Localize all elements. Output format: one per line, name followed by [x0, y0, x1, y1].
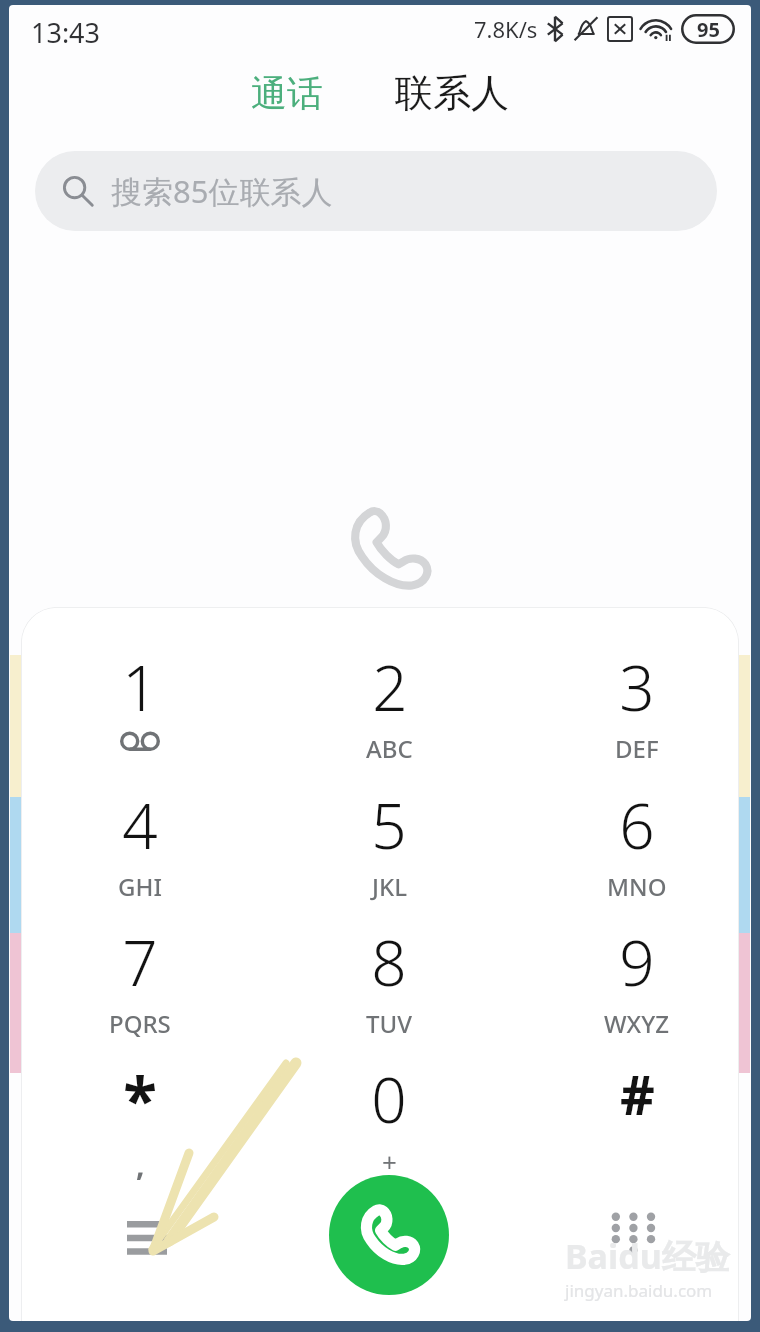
staticText: 2 — [372, 645, 408, 729]
staticText: WXYZ — [604, 1007, 670, 1040]
staticText: 通话 — [251, 71, 323, 116]
staticText: # — [620, 1057, 655, 1131]
button[interactable]: * — [35, 1057, 245, 1189]
staticText: 3 — [619, 645, 655, 729]
staticText: 搜索85位联系人 — [111, 170, 333, 212]
button[interactable]: 通话 — [241, 67, 333, 120]
button[interactable]: 6 — [532, 783, 739, 915]
staticText: + — [382, 1144, 397, 1179]
staticText: GHI — [118, 870, 162, 903]
button[interactable]: 1 — [35, 645, 245, 777]
staticText: 8 — [371, 920, 407, 1004]
staticText: 95 — [697, 16, 720, 43]
button[interactable]: 4 — [35, 783, 245, 915]
staticText: 1 — [122, 645, 158, 729]
staticText: 13:43 — [31, 14, 101, 51]
staticText: 5 — [371, 783, 407, 867]
button[interactable]: Menu — [101, 1193, 193, 1279]
button[interactable]: Keypad — [585, 1193, 677, 1279]
staticText: TUV — [366, 1007, 412, 1040]
button[interactable]: 5 — [284, 783, 494, 915]
staticText: 4 — [122, 783, 158, 867]
staticText: PQRS — [109, 1007, 171, 1040]
staticText: ABC — [366, 732, 413, 765]
staticText: 7.8K/s — [474, 14, 538, 44]
staticText: MNO — [607, 870, 667, 903]
button[interactable]: 8 — [284, 920, 494, 1052]
staticText: JKL — [372, 870, 407, 903]
staticText: , — [136, 1144, 145, 1185]
staticText: Baidu经验 — [565, 1233, 730, 1279]
button[interactable]: 9 — [532, 920, 739, 1052]
staticText: 6 — [619, 783, 655, 867]
staticText: 7 — [122, 920, 158, 1004]
button[interactable]: 3 — [532, 645, 739, 777]
button[interactable]: Call — [329, 1175, 449, 1295]
staticText: 联系人 — [395, 69, 509, 117]
staticText: jingyan.baidu.com — [565, 1279, 713, 1302]
button[interactable]: 搜索85位联系人 — [35, 151, 717, 231]
staticText: 0 — [371, 1057, 407, 1141]
staticText: * — [123, 1057, 157, 1141]
staticText: 9 — [619, 920, 655, 1004]
button[interactable]: 7 — [35, 920, 245, 1052]
button[interactable]: 2 — [284, 645, 494, 777]
button[interactable]: 0 — [284, 1057, 494, 1189]
button[interactable]: # — [532, 1057, 739, 1189]
staticText: DEF — [615, 732, 659, 765]
button[interactable]: 联系人 — [385, 65, 519, 121]
